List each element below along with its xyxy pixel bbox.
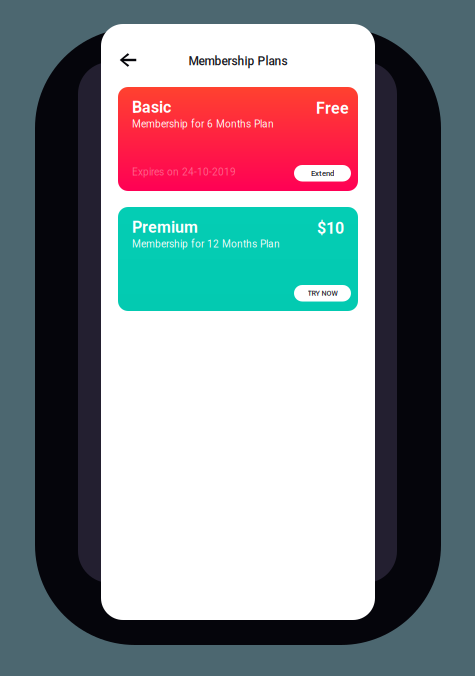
button[interactable]: TRY NOW — [294, 285, 351, 301]
staticText: TRY NOW — [307, 289, 337, 297]
button[interactable]: Extend — [294, 165, 351, 181]
staticText: Free — [316, 99, 349, 118]
button[interactable]: Back — [111, 45, 145, 75]
staticText: Membership Plans — [188, 54, 287, 68]
staticText: Membership for 6 Months Plan — [132, 118, 274, 130]
staticText: Basic — [132, 98, 171, 117]
staticText: Extend — [311, 169, 334, 178]
staticText: Expires on 24-10-2019 — [132, 166, 236, 178]
staticText: Premium — [132, 218, 198, 237]
staticText: $10 — [317, 219, 344, 238]
staticText: Membership for 12 Months Plan — [132, 238, 280, 250]
